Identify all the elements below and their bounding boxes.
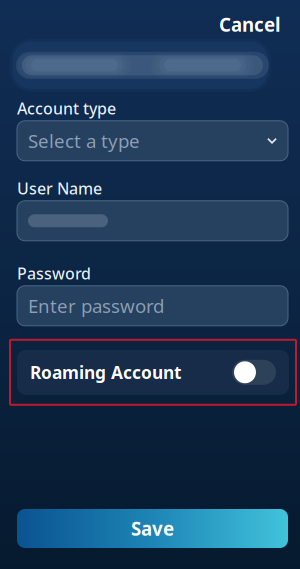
staticText: Select a type [28,128,140,153]
staticText: Save [131,516,174,541]
button[interactable]: Enter password [17,286,288,326]
staticText: Enter password [28,293,164,318]
button[interactable] [17,201,288,241]
staticText: User Name [17,178,102,199]
staticText: Account type [17,98,116,119]
staticText: Password [17,263,91,284]
button[interactable]: Cancel [212,6,288,43]
button[interactable]: Roaming Account [17,350,289,395]
staticText: Cancel [219,12,281,37]
button[interactable]: Save [17,509,288,548]
staticText: Roaming Account [30,361,182,384]
button[interactable]: Select a type [17,121,288,161]
